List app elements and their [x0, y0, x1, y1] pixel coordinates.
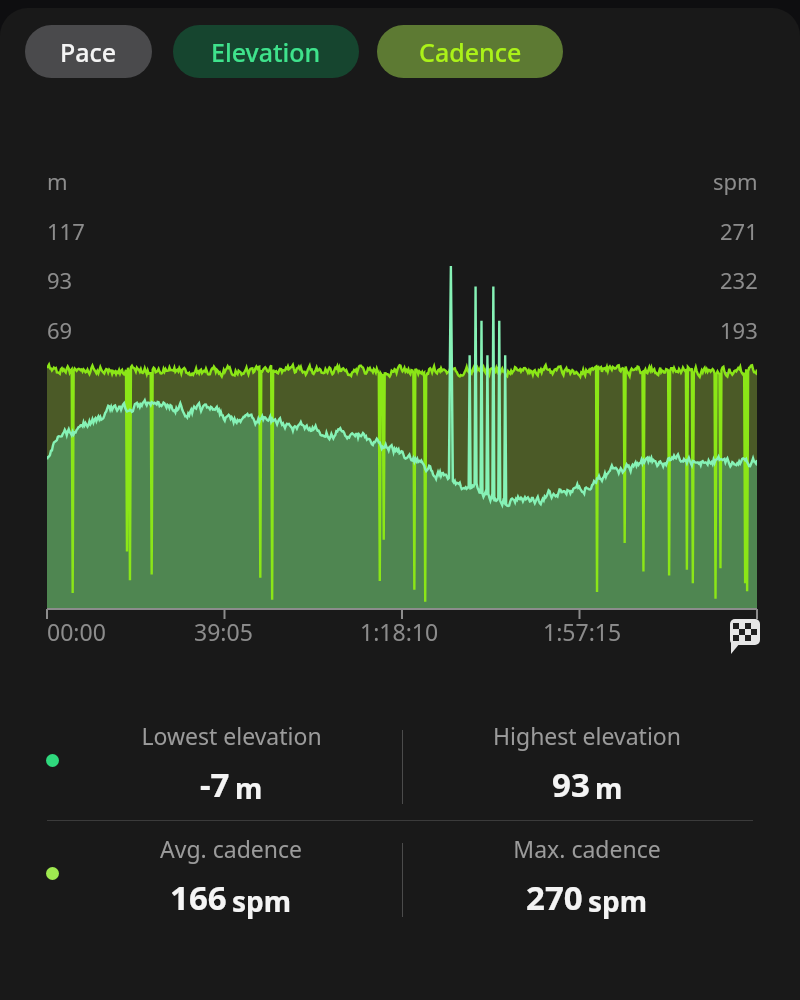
button[interactable]: Lowest elevation: [0, 708, 800, 820]
staticText: 271: [720, 216, 758, 246]
staticText: 77: [732, 464, 758, 494]
staticText: 270: [526, 875, 583, 920]
staticText: 45: [47, 364, 73, 394]
staticText: -27: [47, 513, 80, 543]
staticText: Avg. cadence: [160, 833, 302, 864]
staticText: 93: [552, 762, 590, 807]
staticText: 38: [732, 513, 758, 543]
staticText: 116: [720, 414, 758, 444]
staticText: spm: [232, 882, 292, 920]
staticText: spm: [713, 166, 758, 196]
staticText: 69: [47, 315, 73, 345]
staticText: Cadence: [419, 35, 522, 69]
staticText: m: [595, 769, 623, 807]
staticText: Max. cadence: [513, 833, 661, 864]
staticText: Highest elevation: [493, 720, 681, 751]
staticText: 00:00: [47, 616, 106, 647]
staticText: 193: [720, 315, 758, 345]
staticText: Pace: [60, 35, 117, 69]
staticText: 39:05: [194, 616, 253, 647]
staticText: 232: [720, 265, 758, 295]
staticText: Lowest elevation: [141, 720, 322, 751]
button[interactable]: Finish: [726, 612, 760, 646]
staticText: -7: [200, 762, 230, 807]
button[interactable]: Cadence: [377, 25, 563, 78]
button[interactable]: Elevation: [173, 25, 359, 78]
staticText: 21: [47, 414, 73, 444]
staticText: 117: [47, 216, 85, 246]
staticText: spm: [588, 882, 648, 920]
staticText: m: [235, 769, 263, 807]
staticText: 166: [170, 875, 227, 920]
button[interactable]: Pace: [25, 25, 152, 78]
staticText: 1:18:10: [360, 616, 439, 647]
staticText: m: [47, 166, 68, 196]
staticText: 1:57:15: [543, 616, 622, 647]
staticText: 93: [47, 265, 73, 295]
staticText: 155: [720, 364, 758, 394]
staticText: Elevation: [211, 35, 321, 69]
button[interactable]: Avg. cadence: [0, 821, 800, 933]
